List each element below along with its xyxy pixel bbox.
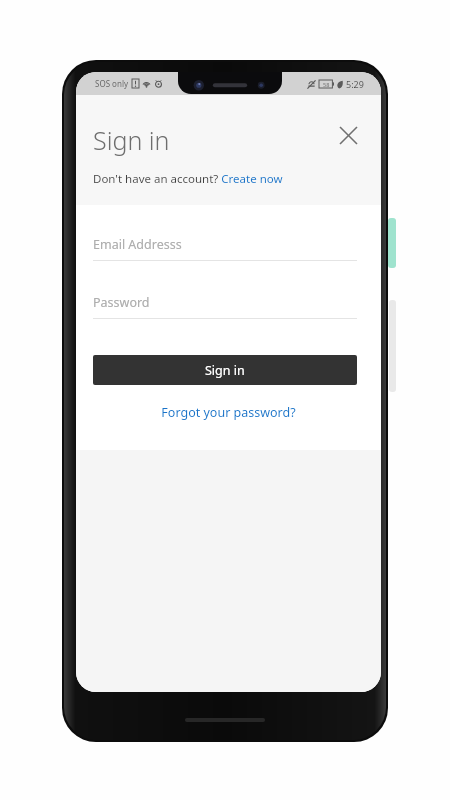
staticText: Email Addresss bbox=[93, 236, 182, 253]
button[interactable]: Forgot your password? bbox=[76, 401, 381, 423]
staticText: Sign in bbox=[205, 362, 245, 379]
staticText: 58 bbox=[323, 81, 330, 88]
button[interactable]: Close bbox=[331, 118, 365, 152]
staticText: Forgot your password? bbox=[161, 404, 296, 421]
button[interactable]: Sign in bbox=[93, 355, 357, 385]
button[interactable]: Don't have an account? Create now bbox=[93, 171, 283, 187]
staticText: SOS only bbox=[95, 78, 129, 89]
staticText: Sign in bbox=[93, 123, 170, 157]
staticText: 5:29 bbox=[346, 78, 364, 90]
staticText: Password bbox=[93, 294, 150, 311]
